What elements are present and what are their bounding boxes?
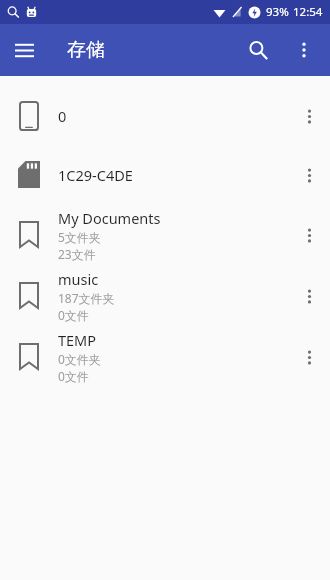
staticText: 5文件夹	[58, 229, 101, 245]
staticText: 93%	[266, 4, 289, 20]
staticText: 0文件	[58, 368, 89, 384]
button[interactable]: More options	[288, 214, 330, 256]
button[interactable]: More options	[282, 28, 326, 72]
button[interactable]: TEMP	[0, 326, 330, 387]
staticText: TEMP	[58, 330, 97, 350]
staticText: music	[58, 269, 99, 289]
staticText: My Documents	[58, 208, 161, 228]
staticText: 0文件	[58, 307, 89, 323]
staticText: 23文件	[58, 246, 96, 262]
button[interactable]: Search	[234, 26, 282, 74]
staticText: 存储	[67, 38, 105, 62]
button[interactable]: 0	[0, 86, 330, 145]
button[interactable]: Open navigation drawer	[0, 26, 48, 74]
staticText: 12:54	[293, 4, 323, 20]
button[interactable]: More options	[288, 95, 330, 137]
button[interactable]: My Documents	[0, 204, 330, 265]
button[interactable]: More options	[288, 336, 330, 378]
staticText: 1C29-C4DE	[58, 165, 133, 185]
button[interactable]: 1C29-C4DE	[0, 145, 330, 204]
staticText: 0	[58, 106, 67, 126]
staticText: 187文件夹	[58, 290, 115, 306]
button[interactable]: music	[0, 265, 330, 326]
staticText: 0文件夹	[58, 351, 101, 367]
button[interactable]: More options	[288, 275, 330, 317]
button[interactable]: More options	[288, 154, 330, 196]
